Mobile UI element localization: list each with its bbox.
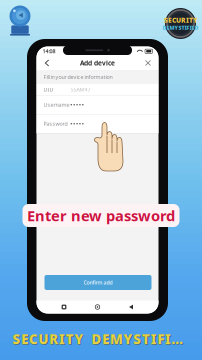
staticText: 14:08: [42, 48, 55, 55]
button[interactable]: Back: [40, 56, 53, 69]
button[interactable]: Confirm add: [44, 275, 151, 290]
button[interactable]: Back: [125, 302, 137, 312]
button[interactable]: Close: [141, 56, 154, 69]
button[interactable]: Username: [36, 95, 158, 114]
staticText: SSAM47: [70, 86, 90, 93]
staticText: SECURITY: [164, 16, 197, 25]
staticText: Confirm add: [83, 279, 112, 286]
button[interactable]: DID: [36, 84, 158, 95]
staticText: Fill in your device information: [43, 73, 112, 81]
button[interactable]: Recents: [58, 302, 70, 312]
button[interactable]: Password: [36, 114, 158, 133]
staticText: Add device: [80, 59, 115, 67]
staticText: Password: [43, 120, 67, 127]
staticText: Username: [43, 101, 69, 108]
button[interactable]: Home: [91, 302, 103, 312]
staticText: SECURITY DEMYSTIFIED: [13, 331, 190, 348]
staticText: DID: [43, 86, 53, 93]
staticText: DEMYSTIFIED: [162, 24, 198, 31]
staticText: Enter new password: [27, 206, 175, 225]
staticText: SECURITY DEMYSTIFIED: [12, 330, 189, 348]
